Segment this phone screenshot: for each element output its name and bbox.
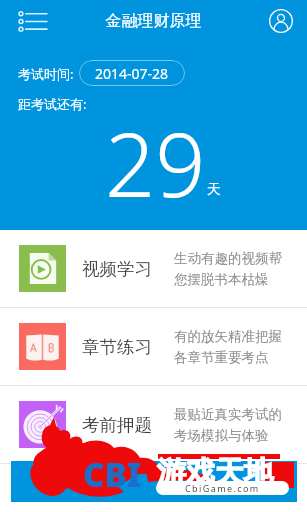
- button[interactable]: 考前押题: [0, 386, 307, 463]
- button[interactable]: Account: [258, 1, 304, 41]
- staticText: 您摆脱书本枯燥: [174, 271, 269, 288]
- staticText: 29: [105, 103, 206, 223]
- staticText: 游戏天地: [157, 454, 273, 491]
- button[interactable]: 视频学习: [0, 230, 307, 307]
- staticText: 视频学习: [82, 258, 152, 280]
- staticText: CbiGame.com: [185, 482, 260, 494]
- button[interactable]: Menu: [10, 2, 56, 42]
- button[interactable]: 章节练习: [0, 308, 307, 385]
- staticText: 各章节重要考点: [174, 349, 269, 366]
- staticText: 考前押题: [82, 414, 152, 436]
- staticText: 最贴近真实考试的: [174, 406, 282, 423]
- staticText: 有的放矢精准把握: [174, 328, 282, 345]
- staticText: 章节练习: [82, 336, 152, 358]
- staticText: 天: [207, 181, 221, 199]
- staticText: 2014-07-28: [95, 64, 169, 83]
- staticText: 生动有趣的视频帮: [174, 250, 282, 267]
- staticText: 考试时间:: [18, 65, 74, 83]
- staticText: CBI: [83, 452, 142, 497]
- button[interactable]: 2014-07-28: [79, 60, 185, 86]
- staticText: 考场模拟与体验: [174, 427, 269, 444]
- staticText: 距考试还有:: [18, 95, 87, 113]
- staticText: 金融理财原理: [46, 11, 261, 31]
